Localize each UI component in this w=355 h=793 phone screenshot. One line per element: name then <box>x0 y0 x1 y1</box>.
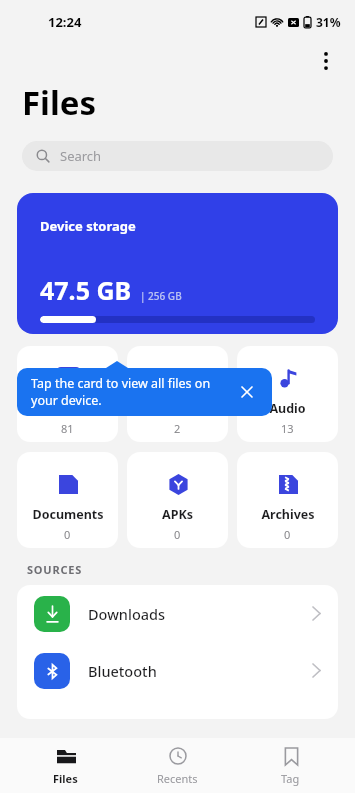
staticText: Search <box>60 147 102 165</box>
staticText: Documents <box>32 506 104 523</box>
staticText: 81 <box>61 421 74 436</box>
button[interactable]: APKs <box>127 452 228 548</box>
button[interactable]: Videos <box>127 346 228 442</box>
button[interactable]: Tag <box>243 738 338 793</box>
staticText: 0 <box>284 527 291 542</box>
button[interactable]: More options <box>313 48 339 74</box>
staticText: Tag <box>281 771 300 786</box>
staticText: 12:24 <box>48 13 82 31</box>
staticText: Audio <box>269 400 306 417</box>
staticText: Bluetooth <box>88 661 157 681</box>
staticText: Device storage <box>40 217 136 235</box>
staticText: Videos <box>157 400 199 417</box>
button[interactable]: Files <box>18 738 113 793</box>
button[interactable]: Archives <box>237 452 338 548</box>
staticText: | 256 GB <box>140 289 182 303</box>
staticText: Files <box>53 771 78 786</box>
button[interactable]: Photos <box>17 346 118 442</box>
staticText: APKs <box>162 506 193 523</box>
button[interactable]: Dismiss tip <box>236 381 258 403</box>
button[interactable]: Downloads <box>17 585 338 642</box>
staticText: 31% <box>316 14 341 30</box>
staticText: 2 <box>174 421 181 436</box>
staticText: Recents <box>157 771 198 786</box>
staticText: 47.5 GB <box>40 273 132 307</box>
button[interactable]: Recents <box>130 738 225 793</box>
staticText: SOURCES <box>27 562 83 577</box>
staticText: Photos <box>46 400 90 417</box>
button[interactable]: Documents <box>17 452 118 548</box>
staticText: 0 <box>64 527 71 542</box>
staticText: 13 <box>281 421 294 436</box>
button[interactable]: Search <box>22 141 333 171</box>
staticText: 0 <box>174 527 181 542</box>
staticText: Archives <box>261 506 315 523</box>
staticText: Downloads <box>88 604 166 624</box>
staticText: Files <box>22 80 97 125</box>
button[interactable]: Device storage <box>17 193 338 334</box>
staticText: Tap the card to view all files on your d… <box>31 375 236 409</box>
button[interactable]: Bluetooth <box>17 642 338 699</box>
button[interactable]: Audio <box>237 346 338 442</box>
